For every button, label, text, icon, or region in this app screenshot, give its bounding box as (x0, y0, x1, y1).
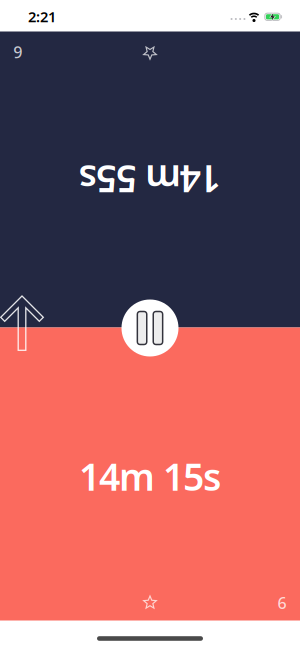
button[interactable]: Pause (121, 299, 178, 356)
staticText: 2:21 (28, 7, 56, 26)
staticText: 14m 15s (79, 451, 221, 501)
staticText: 6 (277, 592, 286, 613)
staticText: 14m 55s (79, 154, 221, 204)
button[interactable]: 14m 15s (0, 327, 300, 620)
button[interactable]: 14m 55s (0, 31, 300, 327)
